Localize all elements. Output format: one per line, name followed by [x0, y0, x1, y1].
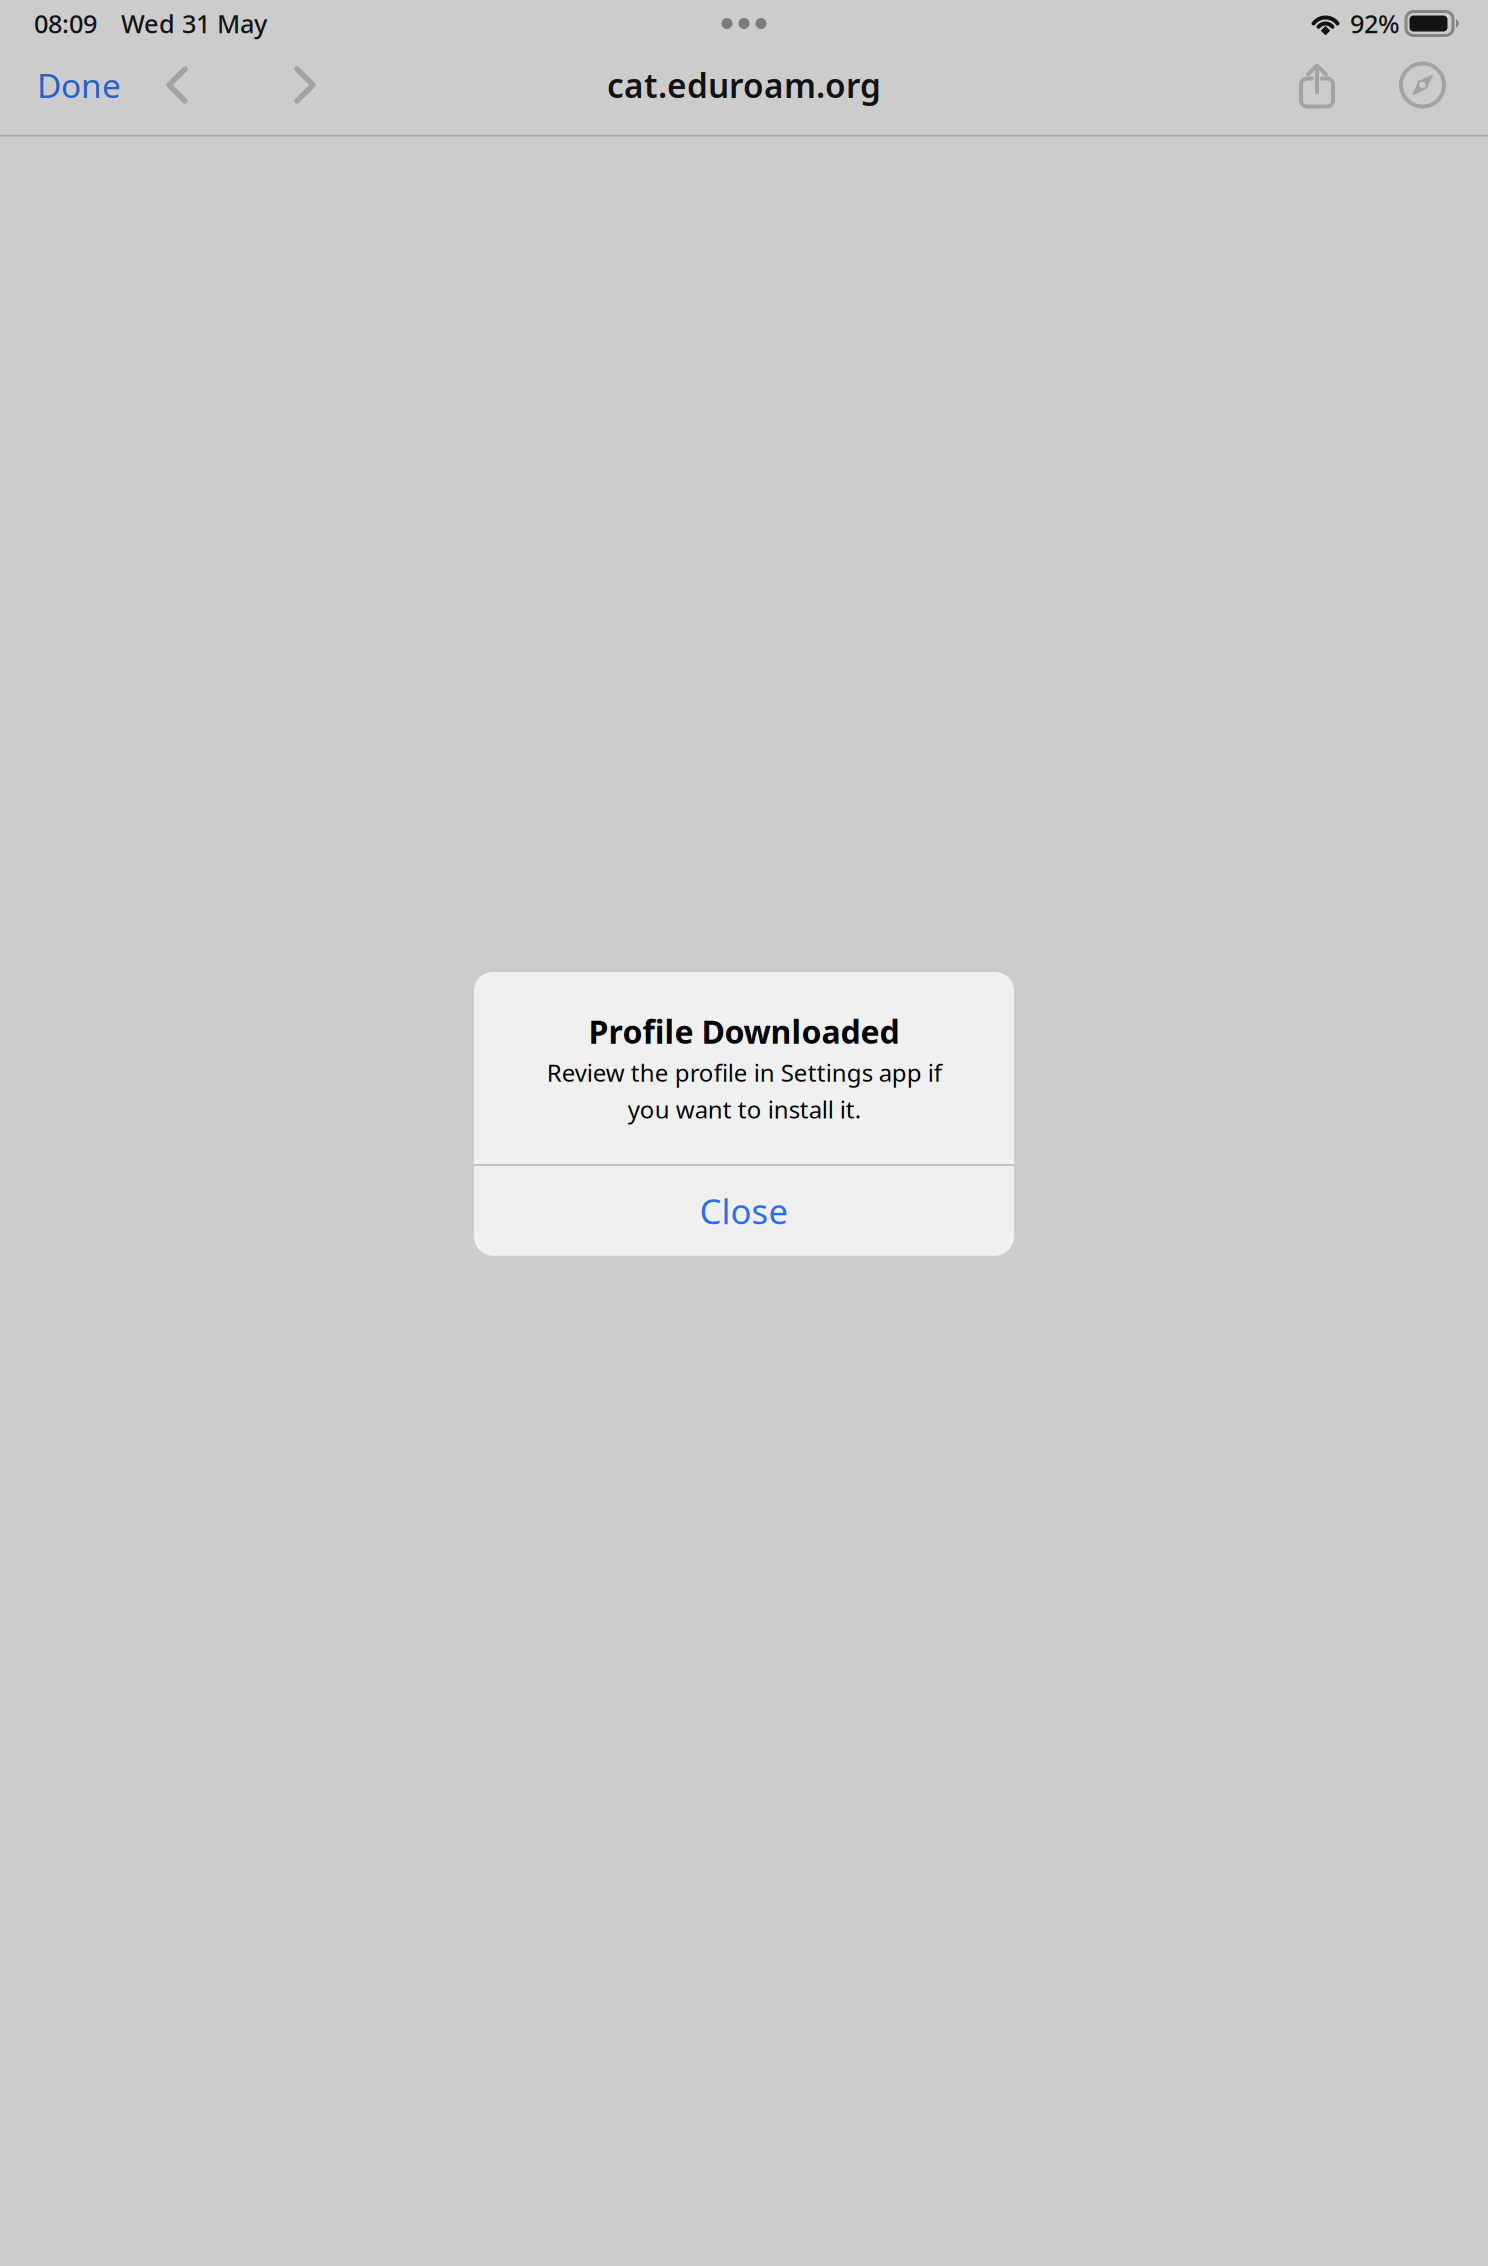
staticText: Close [699, 1188, 788, 1234]
staticText: 08:09 [34, 7, 97, 40]
staticText: Done [37, 63, 121, 107]
staticText: 92% [1350, 7, 1400, 40]
button[interactable]: Open in Safari [1381, 47, 1464, 123]
button[interactable]: Done [17, 47, 141, 123]
button[interactable]: Forward [269, 47, 341, 123]
staticText: Wed 31 May [121, 7, 267, 40]
staticText: Profile Downloaded [588, 1010, 899, 1052]
button[interactable]: Close [474, 1166, 1014, 1256]
button[interactable]: Share [1279, 47, 1355, 123]
staticText: cat.eduroam.org [607, 63, 881, 107]
button[interactable]: Back [141, 47, 213, 123]
staticText: Review the profile in Settings app if yo… [546, 1056, 941, 1125]
